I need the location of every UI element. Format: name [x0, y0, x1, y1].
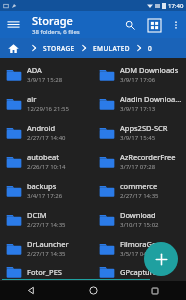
button[interactable]: FilmoraGo: [93, 234, 186, 263]
staticText: 3/5/17 04:...: [120, 250, 154, 258]
staticText: ADA: [27, 65, 42, 75]
staticText: 3/9/17 17:13: [120, 105, 156, 113]
staticText: AzRecorderFree: [120, 152, 176, 162]
button[interactable]: ADA: [0, 60, 93, 89]
staticText: DrLauncher: [27, 239, 69, 249]
button[interactable]: AzRecorderFree: [93, 147, 186, 176]
button[interactable]: Search: [118, 13, 142, 37]
staticText: autobeat: [27, 152, 59, 162]
button[interactable]: EMULATED: [92, 38, 131, 58]
staticText: EMULATED: [93, 44, 130, 53]
button[interactable]: DCIM: [0, 205, 93, 234]
staticText: 2/26/17 10:14: [27, 163, 66, 171]
staticText: 3/7/17 07:28: [120, 163, 156, 171]
button[interactable]: backups: [0, 176, 93, 205]
staticText: 3/9/17 15:45: [120, 134, 156, 142]
button[interactable]: Android: [0, 118, 93, 147]
button[interactable]: Apps2SD-SCR: [93, 118, 186, 147]
button[interactable]: More options: [166, 15, 186, 35]
button[interactable]: Home: [0, 38, 26, 58]
staticText: Fotor_PES: [27, 267, 62, 277]
staticText: Storage: [32, 13, 73, 28]
button[interactable]: Home: [62, 281, 124, 300]
button[interactable]: Add: [144, 242, 178, 276]
staticText: STORAGE: [43, 44, 75, 53]
button[interactable]: STORAGE: [42, 38, 76, 58]
staticText: 3/9/17 15:28: [27, 76, 63, 84]
staticText: Android: [27, 123, 56, 133]
staticText: Aladin Downloa...: [120, 94, 182, 104]
staticText: Apps2SD-SCR: [120, 123, 168, 133]
staticText: 12/29/16 21:55: [27, 105, 69, 113]
staticText: DCIM: [27, 210, 47, 220]
button[interactable]: autobeat: [0, 147, 93, 176]
button[interactable]: Aladin Downloa...: [93, 89, 186, 118]
staticText: 3/4/17 17:26: [27, 192, 63, 200]
button[interactable]: Recent apps: [124, 281, 186, 300]
button[interactable]: ADM Downloads: [93, 60, 186, 89]
staticText: Download: [120, 210, 156, 220]
button[interactable]: Open navigation drawer: [0, 11, 27, 38]
staticText: GPcapture: [120, 267, 157, 277]
staticText: ADM Downloads: [120, 65, 179, 75]
staticText: air: [27, 94, 37, 104]
button[interactable]: Back: [0, 281, 62, 300]
button[interactable]: Switch view: [142, 13, 166, 37]
staticText: backups: [27, 181, 57, 191]
staticText: commerce: [120, 181, 158, 191]
button[interactable]: Fotor_PES: [0, 263, 93, 281]
staticText: 2/27/17 14:35: [27, 221, 66, 229]
staticText: 3/9/17 17:06: [120, 76, 156, 84]
staticText: 2/27/17 14:35: [27, 250, 66, 258]
button[interactable]: GPcapture: [93, 263, 186, 281]
button[interactable]: commerce: [93, 176, 186, 205]
button[interactable]: 0: [147, 38, 154, 58]
staticText: 2/27/17 14:35: [120, 192, 159, 200]
button[interactable]: Download: [93, 205, 186, 234]
staticText: 3/10/17 15:02: [120, 221, 159, 229]
staticText: FilmoraGo: [120, 239, 157, 249]
staticText: 17:40: [168, 2, 184, 10]
staticText: 0: [148, 44, 153, 53]
staticText: 38 folders, 6 files: [32, 28, 80, 36]
staticText: 2/27/17 14:40: [27, 134, 66, 142]
button[interactable]: air: [0, 89, 93, 118]
button[interactable]: DrLauncher: [0, 234, 93, 263]
